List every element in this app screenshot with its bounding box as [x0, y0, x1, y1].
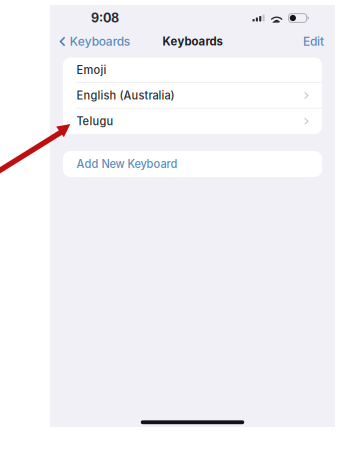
staticText: Add New Keyboard	[76, 157, 177, 171]
button[interactable]: Telugu	[63, 108, 322, 134]
button[interactable]: Emoji	[63, 57, 322, 83]
staticText: Emoji	[76, 63, 106, 76]
staticText: 9:08	[91, 11, 119, 25]
button[interactable]: English (Australia)	[63, 83, 322, 108]
staticText: English (Australia)	[76, 89, 174, 102]
staticText: Edit	[303, 34, 324, 49]
staticText: Keyboards	[70, 34, 130, 49]
button[interactable]: Edit	[303, 30, 335, 53]
button[interactable]: Keyboards	[50, 30, 130, 53]
staticText: Keyboards	[162, 35, 222, 48]
staticText: Telugu	[76, 115, 113, 128]
button[interactable]: Add New Keyboard	[63, 151, 322, 177]
